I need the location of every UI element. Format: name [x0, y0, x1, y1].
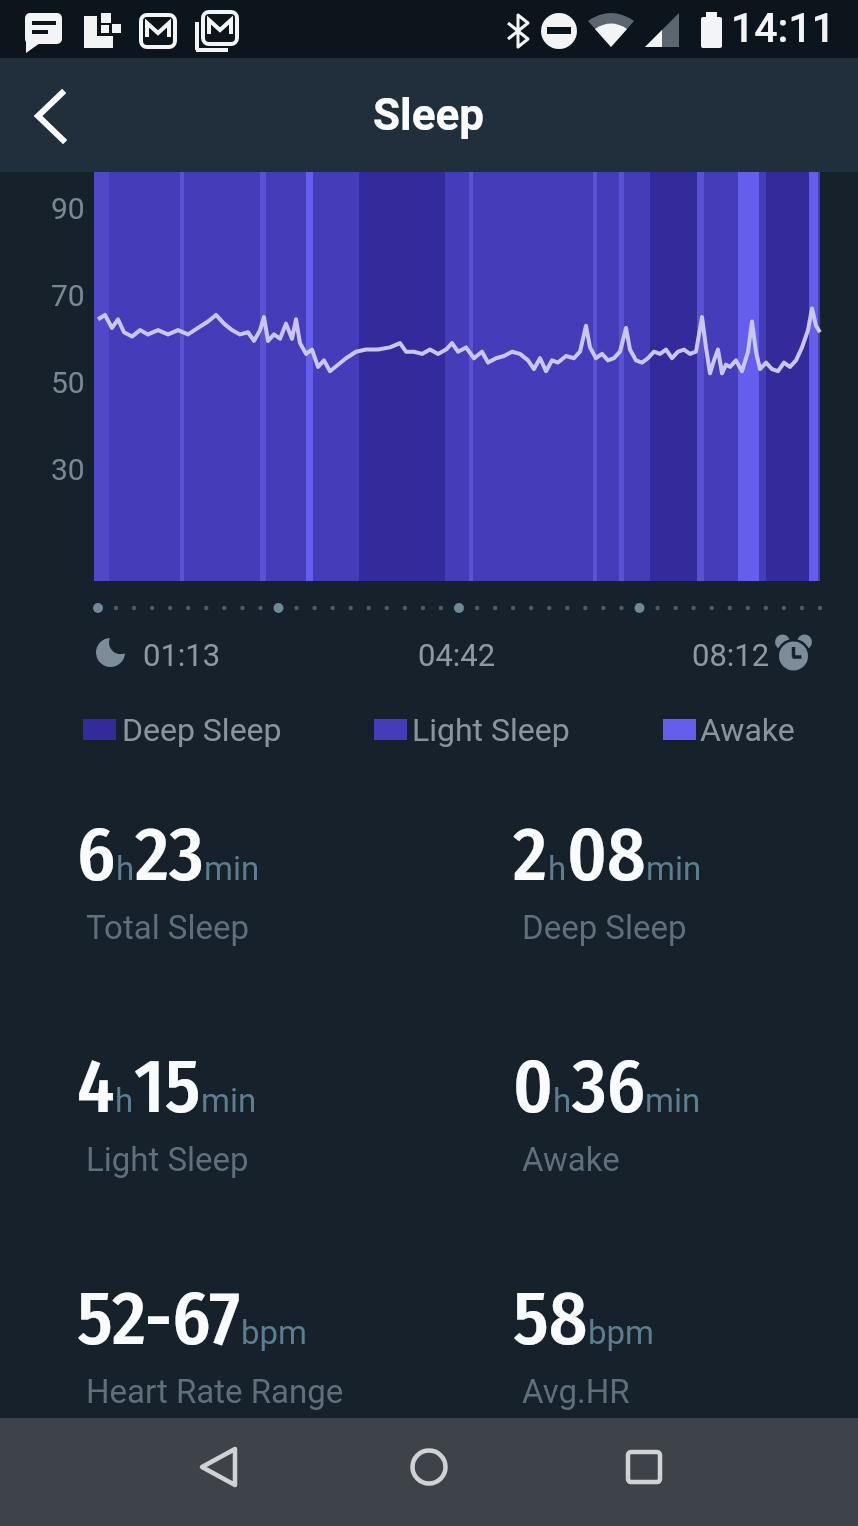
staticText: 36 [572, 1042, 645, 1132]
button[interactable] [609, 1432, 679, 1502]
staticText: Total Sleep [86, 908, 250, 947]
staticText: h [115, 1081, 134, 1120]
staticText: 23 [135, 810, 204, 900]
staticText: Sleep [373, 89, 485, 141]
staticText: 70 [51, 278, 85, 313]
staticText: min [646, 849, 702, 888]
button[interactable] [185, 1432, 255, 1502]
staticText: Awake [700, 711, 795, 749]
staticText: 04:42 [418, 637, 496, 673]
staticText: Light Sleep [86, 1140, 249, 1179]
staticText: 30 [51, 452, 85, 487]
staticText: bpm [588, 1313, 654, 1352]
staticText: Deep Sleep [522, 908, 687, 947]
staticText: 15 [134, 1042, 201, 1132]
staticText: Light Sleep [412, 711, 570, 749]
staticText: 52-67 [77, 1274, 241, 1364]
staticText: 08:12 [692, 637, 770, 673]
staticText: 2 [513, 810, 548, 900]
button[interactable] [18, 83, 82, 147]
staticText: 50 [51, 365, 85, 400]
staticText: 01:13 [143, 637, 221, 673]
staticText: bpm [241, 1313, 307, 1352]
staticText: h [548, 849, 567, 888]
staticText: 6 [77, 810, 116, 900]
staticText: Heart Rate Range [86, 1372, 344, 1411]
staticText: min [201, 1081, 257, 1120]
staticText: 0 [513, 1042, 553, 1132]
button[interactable] [394, 1432, 464, 1502]
staticText: 90 [51, 191, 85, 226]
staticText: h [116, 849, 135, 888]
staticText: h [553, 1081, 572, 1120]
staticText: Deep Sleep [122, 711, 282, 749]
staticText: 14:11 [731, 4, 836, 52]
staticText: min [645, 1081, 701, 1120]
staticText: 08 [567, 810, 646, 900]
staticText: Avg.HR [522, 1372, 630, 1411]
staticText: 58 [513, 1274, 588, 1364]
staticText: Awake [522, 1140, 620, 1179]
staticText: 4 [77, 1042, 115, 1132]
staticText: min [204, 849, 260, 888]
